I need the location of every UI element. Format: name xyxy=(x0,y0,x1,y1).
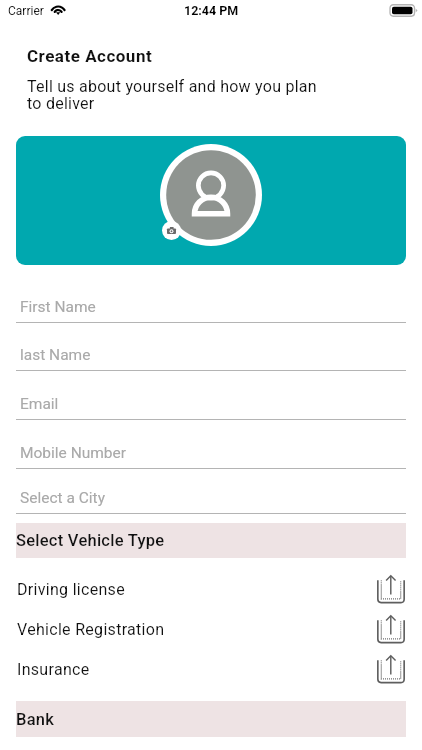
button[interactable]: Take photo xyxy=(162,221,181,240)
staticText: 12:44 PM xyxy=(184,3,239,18)
staticText: Email xyxy=(20,395,59,413)
button[interactable]: Select Vehicle Type xyxy=(16,523,406,558)
button[interactable]: Insurance xyxy=(16,649,406,689)
button[interactable]: last Name xyxy=(16,336,406,371)
staticText: Tell us about yourself and how you plan … xyxy=(27,77,317,113)
staticText: Select a City xyxy=(20,489,105,507)
staticText: Insurance xyxy=(17,660,90,679)
staticText: last Name xyxy=(20,346,91,364)
button[interactable]: Select a City xyxy=(16,479,406,514)
other: Upload Vehicle Registration xyxy=(377,615,405,643)
staticText: Create Account xyxy=(27,46,153,66)
staticText: Driving license xyxy=(17,580,125,599)
button[interactable]: Vehicle Registration xyxy=(16,609,406,649)
staticText: Carrier xyxy=(8,4,44,18)
button[interactable]: Change profile photo xyxy=(160,144,262,246)
other: Wi-Fi xyxy=(50,4,66,16)
staticText: Mobile Number xyxy=(20,444,127,462)
staticText: Vehicle Registration xyxy=(17,620,165,639)
other: Battery xyxy=(389,3,417,18)
other: Upload Insurance xyxy=(377,655,405,683)
other: Upload Driving license xyxy=(377,575,405,603)
button[interactable]: Email xyxy=(16,385,406,420)
staticText: Select Vehicle Type xyxy=(16,531,165,550)
button[interactable]: Mobile Number xyxy=(16,434,406,469)
button[interactable]: Bank xyxy=(16,701,406,737)
button[interactable]: First Name xyxy=(16,288,406,323)
staticText: Bank xyxy=(16,710,55,729)
staticText: First Name xyxy=(20,298,96,316)
button[interactable]: Driving license xyxy=(16,569,406,609)
